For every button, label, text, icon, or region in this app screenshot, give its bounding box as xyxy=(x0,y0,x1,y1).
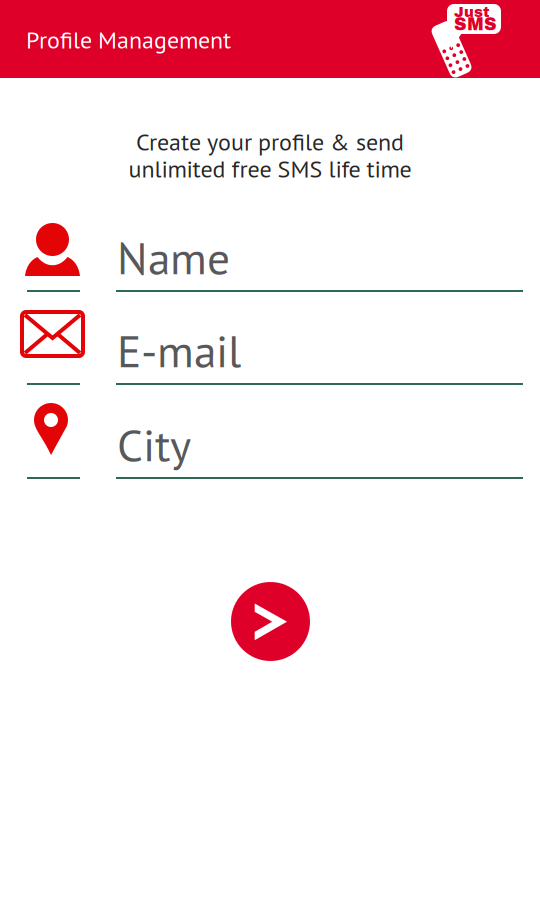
button[interactable]: Name xyxy=(0,197,540,290)
staticText: E-mail xyxy=(117,321,241,380)
staticText: Create your profile & send xyxy=(136,126,404,157)
button[interactable]: City xyxy=(0,384,540,477)
staticText: SMS xyxy=(454,15,497,34)
button[interactable]: E-mail xyxy=(0,290,540,383)
button[interactable]: Submit xyxy=(231,582,310,661)
staticText: unlimited free SMS life time xyxy=(128,153,411,184)
staticText: Name xyxy=(117,228,230,287)
staticText: City xyxy=(117,415,191,474)
staticText: Just xyxy=(454,4,490,20)
staticText: Profile Management xyxy=(26,24,231,55)
